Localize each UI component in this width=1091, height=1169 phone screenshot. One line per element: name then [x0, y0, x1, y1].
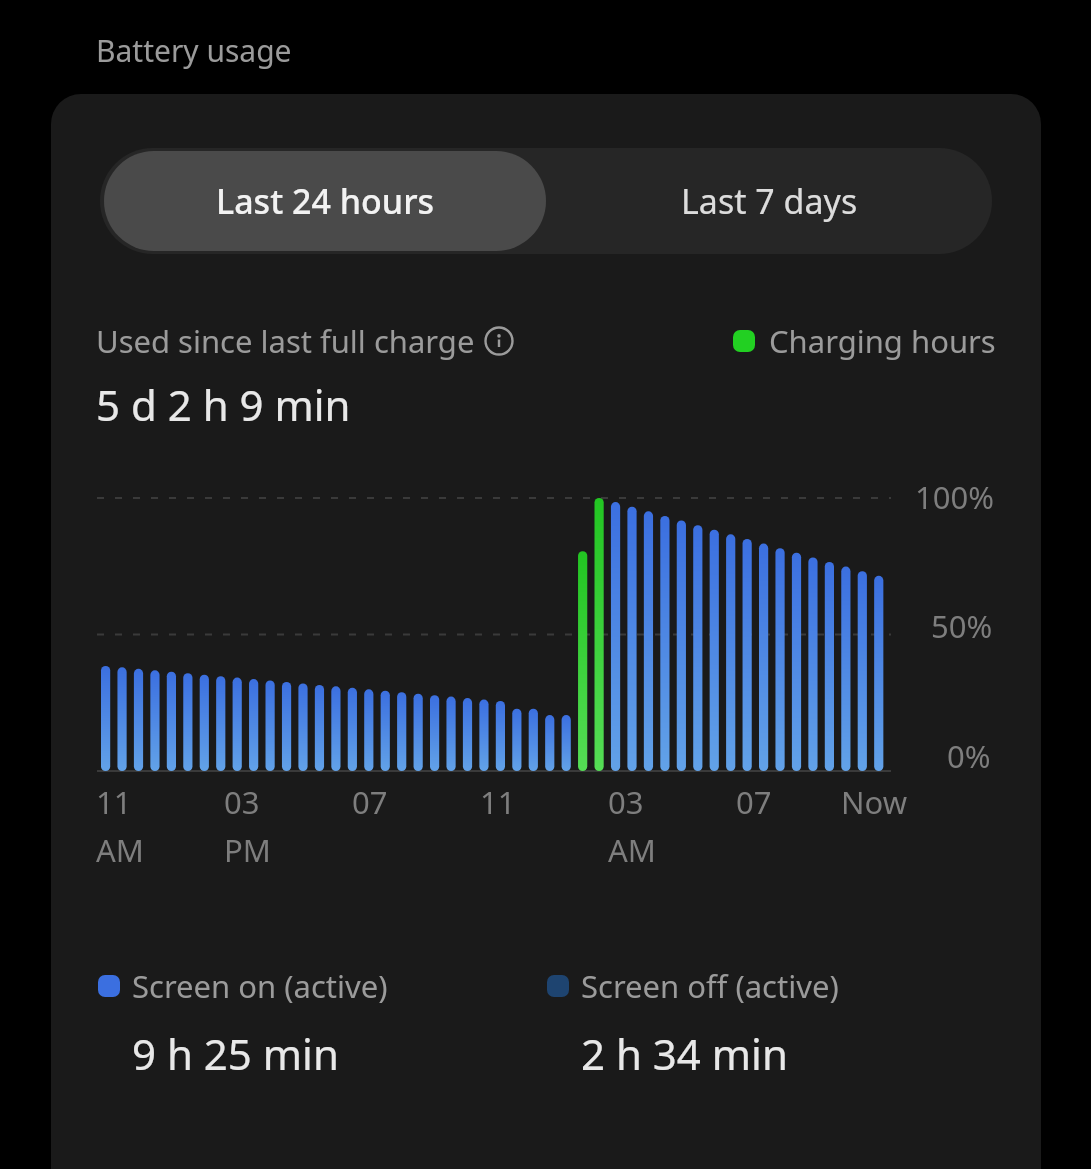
- staticText: Used since last full charge: [96, 320, 475, 362]
- staticText: 2 h 34 min: [581, 1025, 788, 1082]
- staticText: Screen off (active): [581, 965, 839, 1007]
- staticText: 03: [608, 781, 644, 823]
- staticText: 07: [736, 781, 772, 823]
- staticText: 5 d 2 h 9 min: [96, 376, 351, 433]
- staticText: 100%: [915, 476, 994, 518]
- button[interactable]: Last 7 days: [546, 151, 992, 251]
- button[interactable]: Used since last full charge: [96, 320, 514, 362]
- other: Info: [484, 326, 514, 356]
- staticText: Last 7 days: [681, 178, 858, 224]
- staticText: 07: [352, 781, 388, 823]
- staticText: 11: [480, 781, 516, 823]
- button[interactable]: Screen off (active): [547, 965, 996, 1082]
- staticText: Now: [841, 781, 908, 823]
- staticText: Charging hours: [769, 320, 996, 362]
- staticText: PM: [224, 829, 271, 871]
- staticText: Screen on (active): [132, 965, 388, 1007]
- staticText: Last 24 hours: [216, 178, 435, 224]
- staticText: 9 h 25 min: [132, 1025, 339, 1082]
- staticText: 11: [96, 781, 132, 823]
- staticText: AM: [608, 829, 656, 871]
- button[interactable]: Screen on (active): [98, 965, 547, 1082]
- staticText: 0%: [947, 735, 991, 777]
- staticText: Battery usage: [96, 30, 292, 71]
- staticText: 03: [224, 781, 260, 823]
- button[interactable]: Last 24 hours: [104, 151, 546, 251]
- staticText: AM: [96, 829, 144, 871]
- staticText: 50%: [931, 605, 993, 647]
